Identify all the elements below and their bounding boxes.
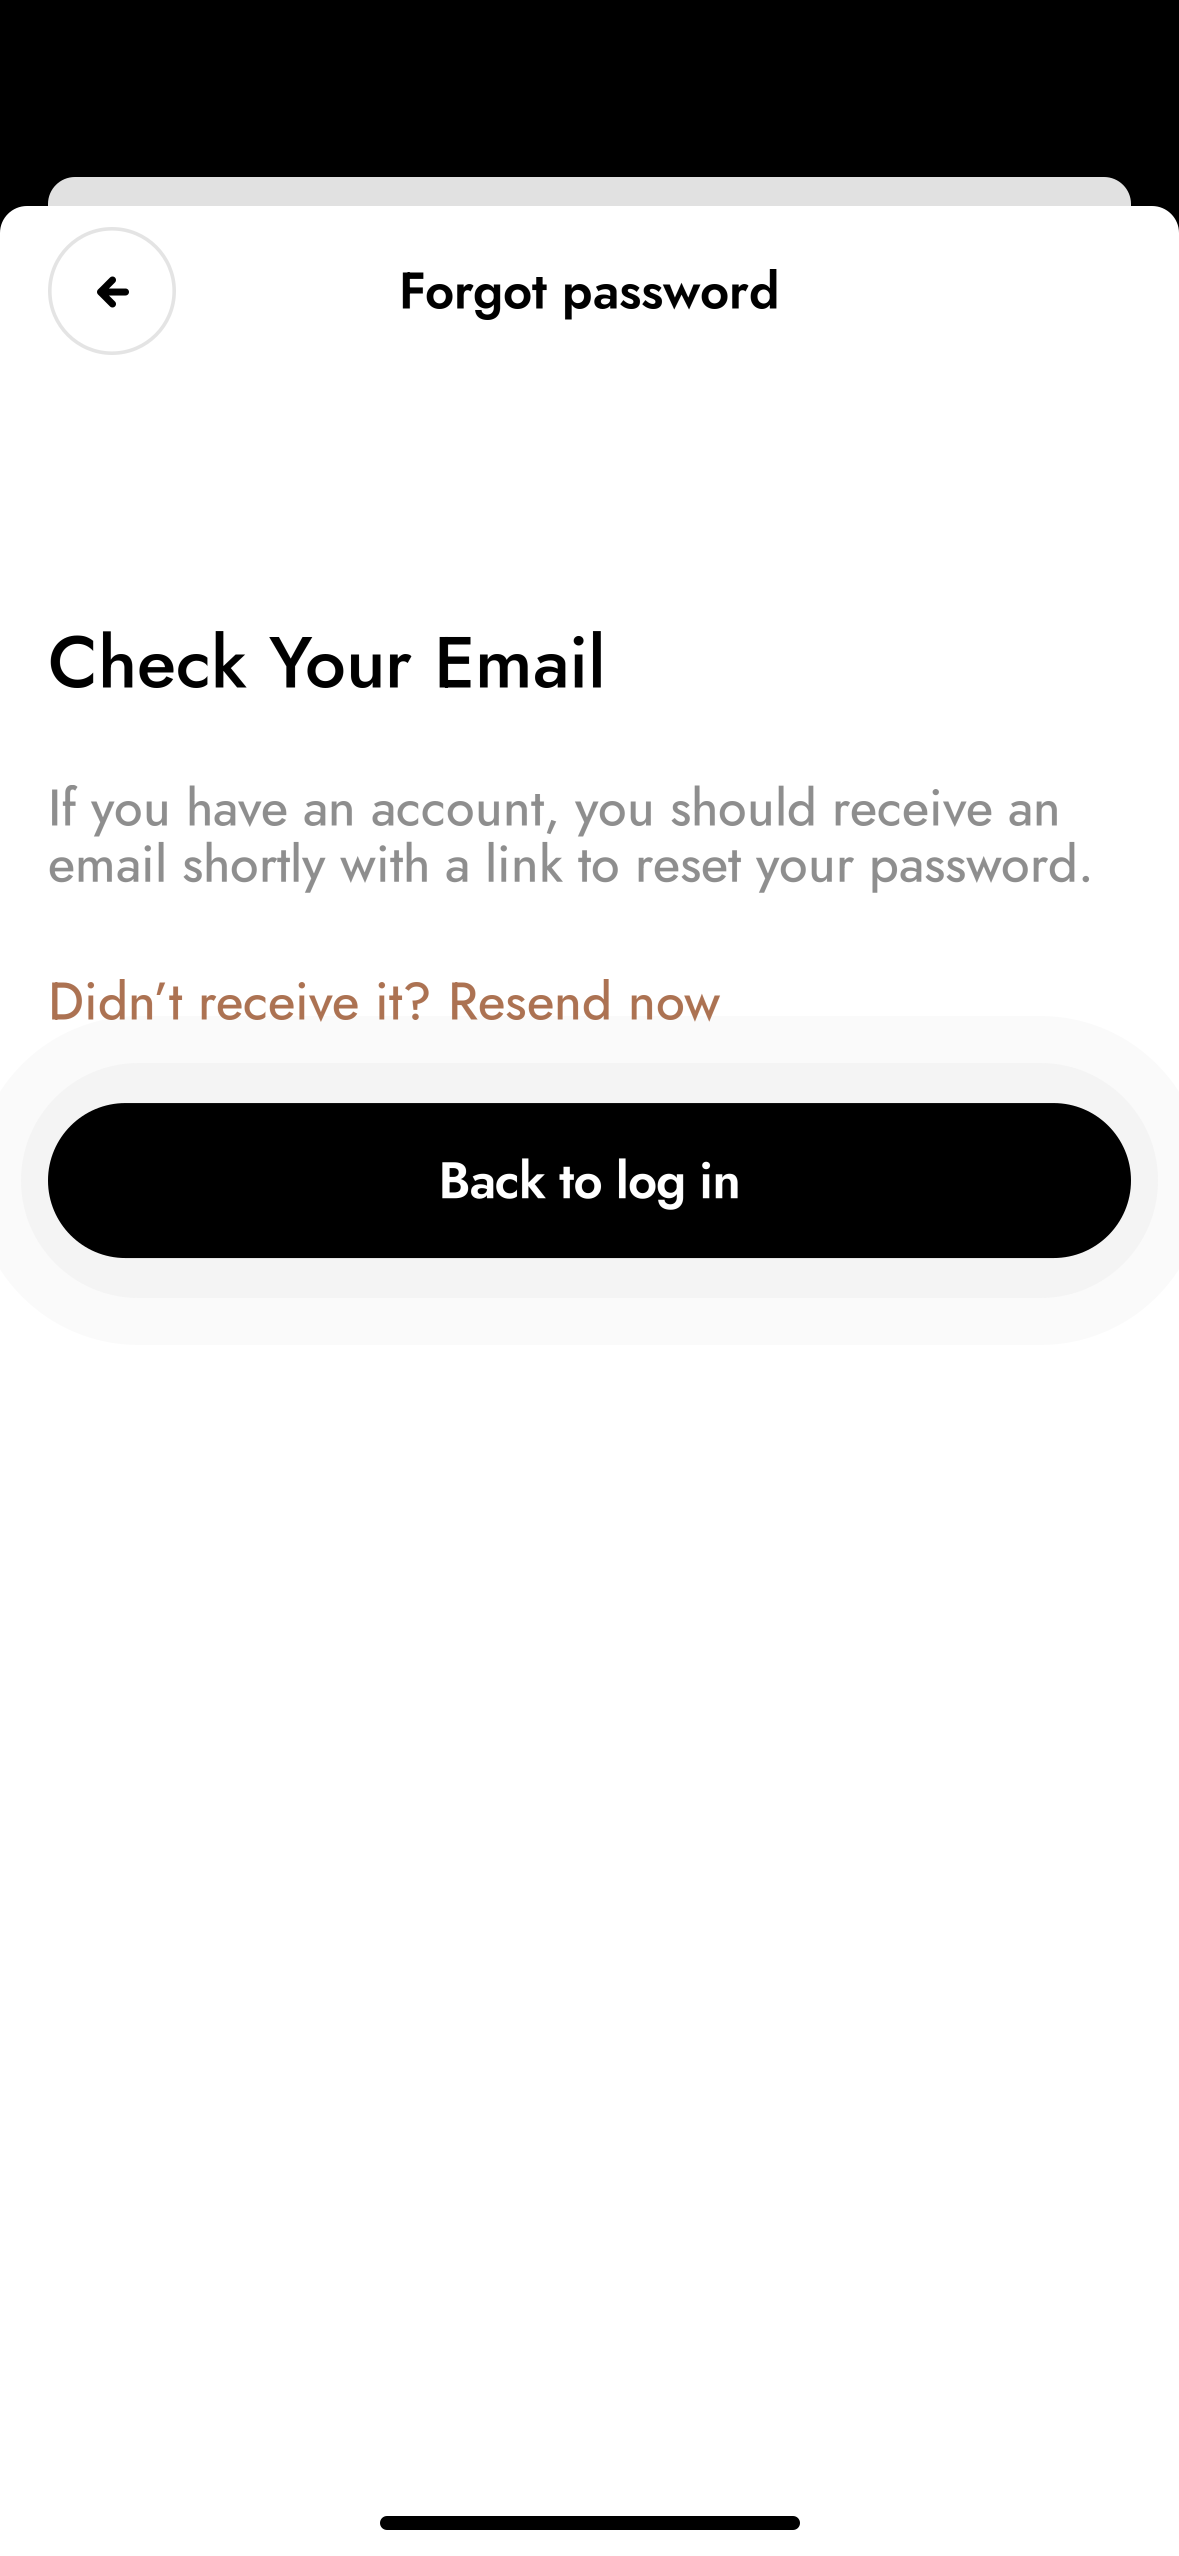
- staticText: Back to log in: [438, 1144, 740, 1217]
- button[interactable]: Back to log in: [48, 1103, 1131, 1258]
- button[interactable]: Didn’t receive it? Resend now: [48, 964, 720, 1039]
- staticText: Didn’t receive it? Resend now: [48, 964, 720, 1039]
- staticText: Forgot password: [399, 254, 780, 328]
- staticText: If you have an account, you should recei…: [48, 780, 1094, 892]
- staticText: Check Your Email: [48, 610, 606, 715]
- button[interactable]: Back: [48, 227, 176, 355]
